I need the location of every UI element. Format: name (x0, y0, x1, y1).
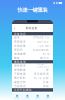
staticText: › (50, 76, 51, 80)
button[interactable]: 电池健康 (12, 52, 53, 56)
staticText: 磁盘空间 (14, 80, 26, 84)
staticText: › (50, 80, 51, 84)
staticText: iOS 16.2 (37, 40, 49, 43)
button[interactable]: 下载来源 (12, 72, 53, 76)
staticText: 足够 (43, 80, 49, 84)
staticText: › (50, 56, 51, 60)
staticText: 快速一键重装 (17, 7, 47, 13)
staticText: 电池健康 (14, 52, 26, 56)
staticText: 网络 (14, 56, 20, 60)
button[interactable]: 固件版本 (12, 64, 53, 68)
staticText: iPhone 13 (33, 36, 49, 39)
staticText: 保留数据 (14, 68, 26, 71)
staticText: › (50, 48, 51, 52)
button[interactable]: 存储容量 (12, 44, 53, 48)
staticText: 当前状态 (14, 84, 26, 88)
staticText: 系统版本 (14, 40, 26, 43)
button[interactable]: 保留数据 (12, 68, 53, 72)
button[interactable]: 当前状态 (12, 84, 53, 88)
staticText: 系统信息 (25, 26, 37, 30)
staticText: 预计耗时 (14, 76, 26, 80)
button[interactable]: 磁盘空间 (12, 80, 53, 84)
staticText: 型号 (14, 36, 20, 39)
staticText: › (50, 52, 51, 56)
staticText: › (50, 36, 51, 39)
staticText: Wi-Fi 6 (40, 56, 49, 60)
staticText: 是 (46, 68, 49, 71)
staticText: ⋯ (48, 26, 51, 29)
button[interactable]: 序列号 (12, 48, 53, 52)
staticText: 下载来源 (14, 72, 26, 75)
staticText: 87% (43, 52, 49, 56)
staticText: ‹ (14, 25, 15, 31)
staticText: 序列号 (14, 48, 23, 51)
staticText: › (50, 64, 51, 67)
staticText: › (50, 68, 51, 71)
staticText: › (50, 44, 51, 47)
staticText: › (50, 84, 51, 88)
button[interactable]: 预计耗时 (12, 76, 53, 80)
staticText: 官方服务器 (34, 72, 49, 75)
staticText: › (50, 40, 51, 43)
staticText: 16.2 (20C65) (37, 62, 49, 69)
staticText: 约 12 分钟 (34, 76, 49, 80)
staticText: 存储容量 (14, 44, 26, 47)
staticText: 就绪 (43, 84, 49, 88)
button[interactable]: 网络 (12, 56, 53, 60)
staticText: 设备信息 (14, 32, 26, 35)
staticText: 128 GB (38, 44, 49, 47)
staticText: F2LX4N9QK (33, 48, 49, 52)
staticText: 立即开始重装 (14, 88, 32, 92)
staticText: 重装选项 (14, 60, 26, 63)
button[interactable]: 系统版本 (12, 40, 53, 44)
staticText: 固件版本 (14, 64, 26, 67)
staticText: › (50, 72, 51, 76)
button[interactable]: 型号 (12, 35, 53, 40)
